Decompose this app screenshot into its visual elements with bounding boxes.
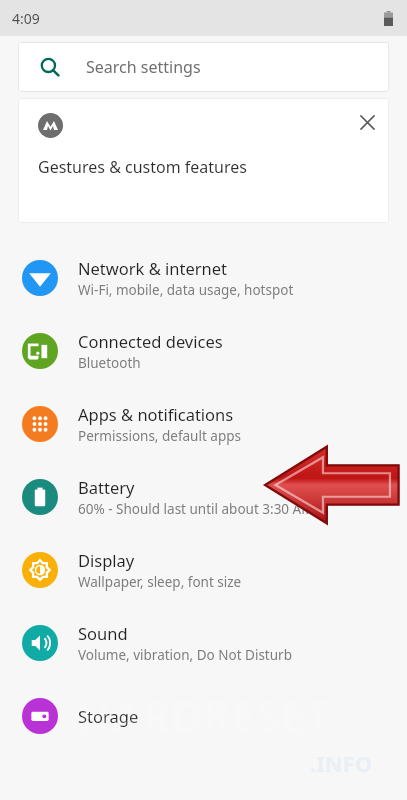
button[interactable]: Storage: [0, 679, 407, 752]
staticText: Sound: [78, 622, 128, 644]
staticText: Apps & notifications: [78, 403, 234, 425]
button[interactable]: Search settings: [18, 42, 389, 92]
staticText: 4:09: [12, 9, 40, 28]
staticText: Bluetooth: [78, 354, 141, 372]
button[interactable]: Display: [0, 533, 407, 606]
staticText: Battery: [78, 476, 135, 498]
button[interactable]: Dismiss suggestion: [353, 108, 381, 136]
staticText: Gestures & custom features: [38, 156, 247, 178]
staticText: Wi-Fi, mobile, data usage, hotspot: [78, 281, 294, 299]
staticText: Permissions, default apps: [78, 427, 241, 445]
button[interactable]: Sound: [0, 606, 407, 679]
button[interactable]: Apps & notifications: [0, 387, 407, 460]
staticText: Storage: [78, 705, 139, 727]
staticText: HARDRESET: [14, 686, 394, 746]
staticText: Network & internet: [78, 257, 228, 279]
staticText: Connected devices: [78, 330, 223, 352]
button[interactable]: Network & internet: [0, 241, 407, 314]
staticText: Display: [78, 549, 135, 571]
button[interactable]: Battery: [0, 460, 407, 533]
staticText: Search settings: [86, 56, 201, 78]
staticText: Volume, vibration, Do Not Disturb: [78, 646, 292, 664]
staticText: Wallpaper, sleep, font size: [78, 573, 242, 591]
button[interactable]: Gestures & custom features: [18, 98, 389, 223]
staticText: 60% - Should last until about 3:30 AM: [78, 500, 314, 518]
button[interactable]: Connected devices: [0, 314, 407, 387]
staticText: .INFO: [310, 748, 373, 778]
